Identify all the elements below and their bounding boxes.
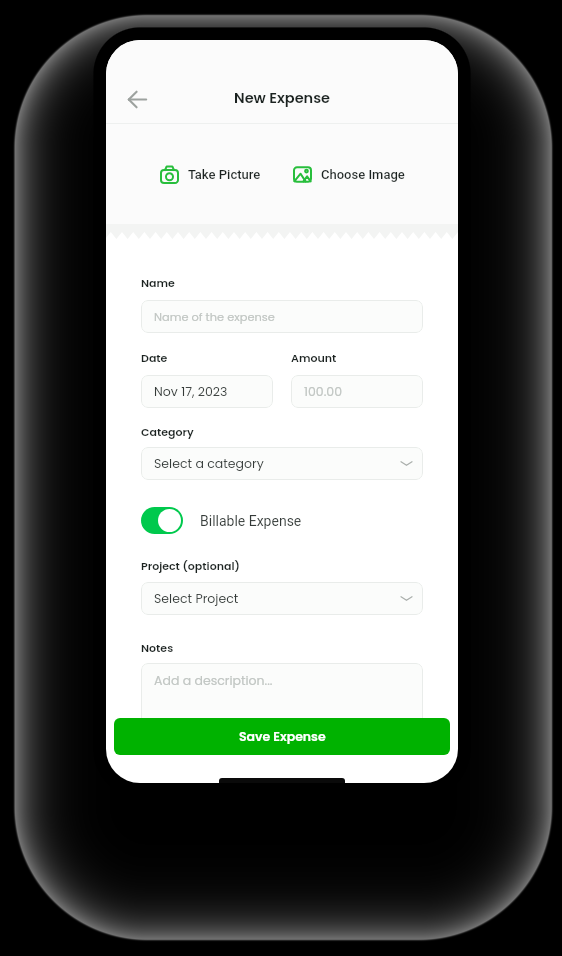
button[interactable]: 100.00 <box>291 375 423 408</box>
button[interactable]: Choose Image <box>293 161 405 187</box>
staticText: Select a category <box>154 455 264 472</box>
staticText: Take Picture <box>188 167 261 182</box>
staticText: 100.00 <box>304 383 343 400</box>
staticText: Select Project <box>154 590 239 607</box>
button[interactable]: Take Picture <box>160 161 261 187</box>
button[interactable]: Name of the expense <box>141 300 423 333</box>
staticText: Save Expense <box>239 728 326 745</box>
staticText: Date <box>141 350 168 365</box>
button[interactable]: Back <box>113 75 161 123</box>
staticText: Project (optional) <box>141 558 240 573</box>
button[interactable]: Select a category <box>141 447 423 480</box>
button[interactable]: Select Project <box>141 582 423 615</box>
staticText: New Expense <box>234 88 331 108</box>
staticText: Billable Expense <box>200 513 302 529</box>
button[interactable]: Save Expense <box>114 718 450 755</box>
staticText: Choose Image <box>321 167 405 182</box>
staticText: Nov 17, 2023 <box>154 383 228 400</box>
button[interactable]: Add a description... <box>141 663 423 735</box>
staticText: Notes <box>141 640 174 655</box>
staticText: Name of the expense <box>154 309 275 325</box>
button[interactable]: Billable Expense <box>141 507 302 534</box>
staticText: Category <box>141 424 194 439</box>
staticText: Add a description... <box>154 672 273 689</box>
staticText: Name <box>141 275 175 290</box>
button[interactable]: Nov 17, 2023 <box>141 375 273 408</box>
staticText: Amount <box>291 350 337 365</box>
